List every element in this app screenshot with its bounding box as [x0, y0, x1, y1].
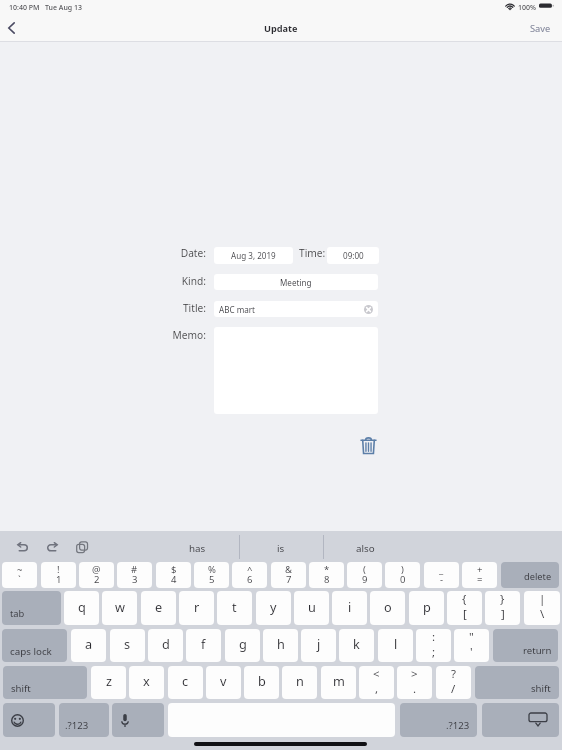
button[interactable]: Delete [356, 433, 380, 457]
button[interactable]: is [239, 541, 323, 555]
staticText: l [394, 635, 398, 652]
button[interactable]: } [485, 591, 520, 625]
staticText: return [523, 644, 552, 657]
button[interactable]: | [524, 591, 560, 625]
button[interactable]: " [454, 629, 489, 662]
staticText: Time: [299, 246, 326, 260]
button[interactable]: e [141, 591, 176, 625]
button[interactable]: # [117, 562, 152, 588]
button[interactable]: o [370, 591, 405, 625]
staticText: shift [11, 682, 31, 695]
staticText: shift [531, 682, 551, 695]
button[interactable]: ^ [232, 562, 267, 588]
staticText: ; [432, 644, 436, 660]
staticText: : [432, 629, 436, 645]
button[interactable]: d [148, 629, 183, 662]
button[interactable]: f [186, 629, 221, 662]
button[interactable]: s [110, 629, 145, 662]
staticText: caps lock [10, 645, 52, 658]
button[interactable]: Dictate [112, 703, 164, 737]
staticText: 1 [56, 573, 62, 586]
button[interactable]: a [71, 629, 106, 662]
staticText: .?123 [446, 719, 470, 732]
button[interactable]: return [493, 629, 558, 662]
button[interactable]: ) [385, 562, 420, 588]
button[interactable]: Meeting [214, 274, 378, 290]
button[interactable]: Hide keyboard [482, 703, 559, 737]
button[interactable]: i [332, 591, 367, 625]
button[interactable]: l [378, 629, 413, 662]
staticText: a [85, 635, 93, 652]
button[interactable]: x [129, 666, 164, 699]
button[interactable]: .?123 [400, 703, 477, 737]
staticText: c [182, 672, 189, 689]
staticText: v [220, 672, 227, 689]
staticText: t [232, 598, 237, 615]
button[interactable]: * [309, 562, 344, 588]
button[interactable]: shift [475, 666, 559, 699]
staticText: also [356, 542, 375, 555]
button[interactable]: Emoji [3, 703, 55, 737]
staticText: j [317, 635, 321, 652]
button[interactable]: g [225, 629, 260, 662]
button[interactable]: + [462, 562, 497, 588]
button[interactable]: b [244, 666, 279, 699]
staticText: \ [540, 606, 545, 622]
button[interactable]: { [447, 591, 482, 625]
button[interactable]: Copy [71, 536, 93, 558]
button[interactable]: n [282, 666, 317, 699]
staticText: } [500, 591, 505, 607]
button[interactable]: ? [436, 666, 471, 699]
button[interactable]: @ [79, 562, 114, 588]
button[interactable]: k [339, 629, 374, 662]
button[interactable]: ! [41, 562, 76, 588]
button[interactable]: z [91, 666, 126, 699]
staticText: # [131, 563, 138, 576]
button[interactable]: v [206, 666, 241, 699]
button[interactable]: q [64, 591, 99, 625]
staticText: h [277, 635, 285, 652]
staticText: Memo: [156, 328, 206, 342]
button[interactable]: 09:00 [327, 247, 379, 264]
staticText: Save [530, 22, 551, 35]
button[interactable]: Back [0, 14, 24, 42]
button[interactable]: Redo [41, 536, 63, 558]
staticText: 8 [324, 573, 330, 586]
button[interactable]: Undo [11, 536, 33, 558]
button[interactable]: ~ [2, 562, 37, 588]
button[interactable]: < [359, 666, 394, 699]
button[interactable]: p [409, 591, 444, 625]
button[interactable]: delete [501, 562, 559, 588]
button[interactable]: .?123 [59, 703, 109, 737]
button[interactable]: Aug 3, 2019 [214, 247, 293, 264]
button[interactable]: j [301, 629, 336, 662]
button[interactable]: & [271, 562, 306, 588]
button[interactable]: ( [347, 562, 382, 588]
button[interactable]: w [102, 591, 137, 625]
button[interactable]: has [155, 541, 239, 555]
button[interactable]: : [416, 629, 451, 662]
button[interactable]: t [217, 591, 252, 625]
button[interactable]: c [168, 666, 203, 699]
button[interactable]: h [263, 629, 298, 662]
staticText: z [106, 672, 112, 689]
button[interactable]: r [179, 591, 214, 625]
button[interactable]: _ [424, 562, 459, 588]
button[interactable]: $ [156, 562, 191, 588]
button[interactable]: u [294, 591, 329, 625]
staticText: < [373, 666, 380, 682]
button[interactable]: > [397, 666, 432, 699]
button[interactable]: % [194, 562, 229, 588]
button[interactable]: also [323, 541, 407, 555]
button[interactable]: Save [530, 14, 551, 42]
button[interactable]: caps lock [2, 629, 67, 662]
staticText: ' [470, 644, 473, 660]
staticText: g [239, 635, 247, 652]
button[interactable]: shift [3, 666, 87, 699]
button[interactable]: m [321, 666, 356, 699]
button[interactable]: ABC mart [214, 301, 378, 317]
button[interactable]: y [256, 591, 291, 625]
button[interactable]: tab [2, 591, 61, 625]
